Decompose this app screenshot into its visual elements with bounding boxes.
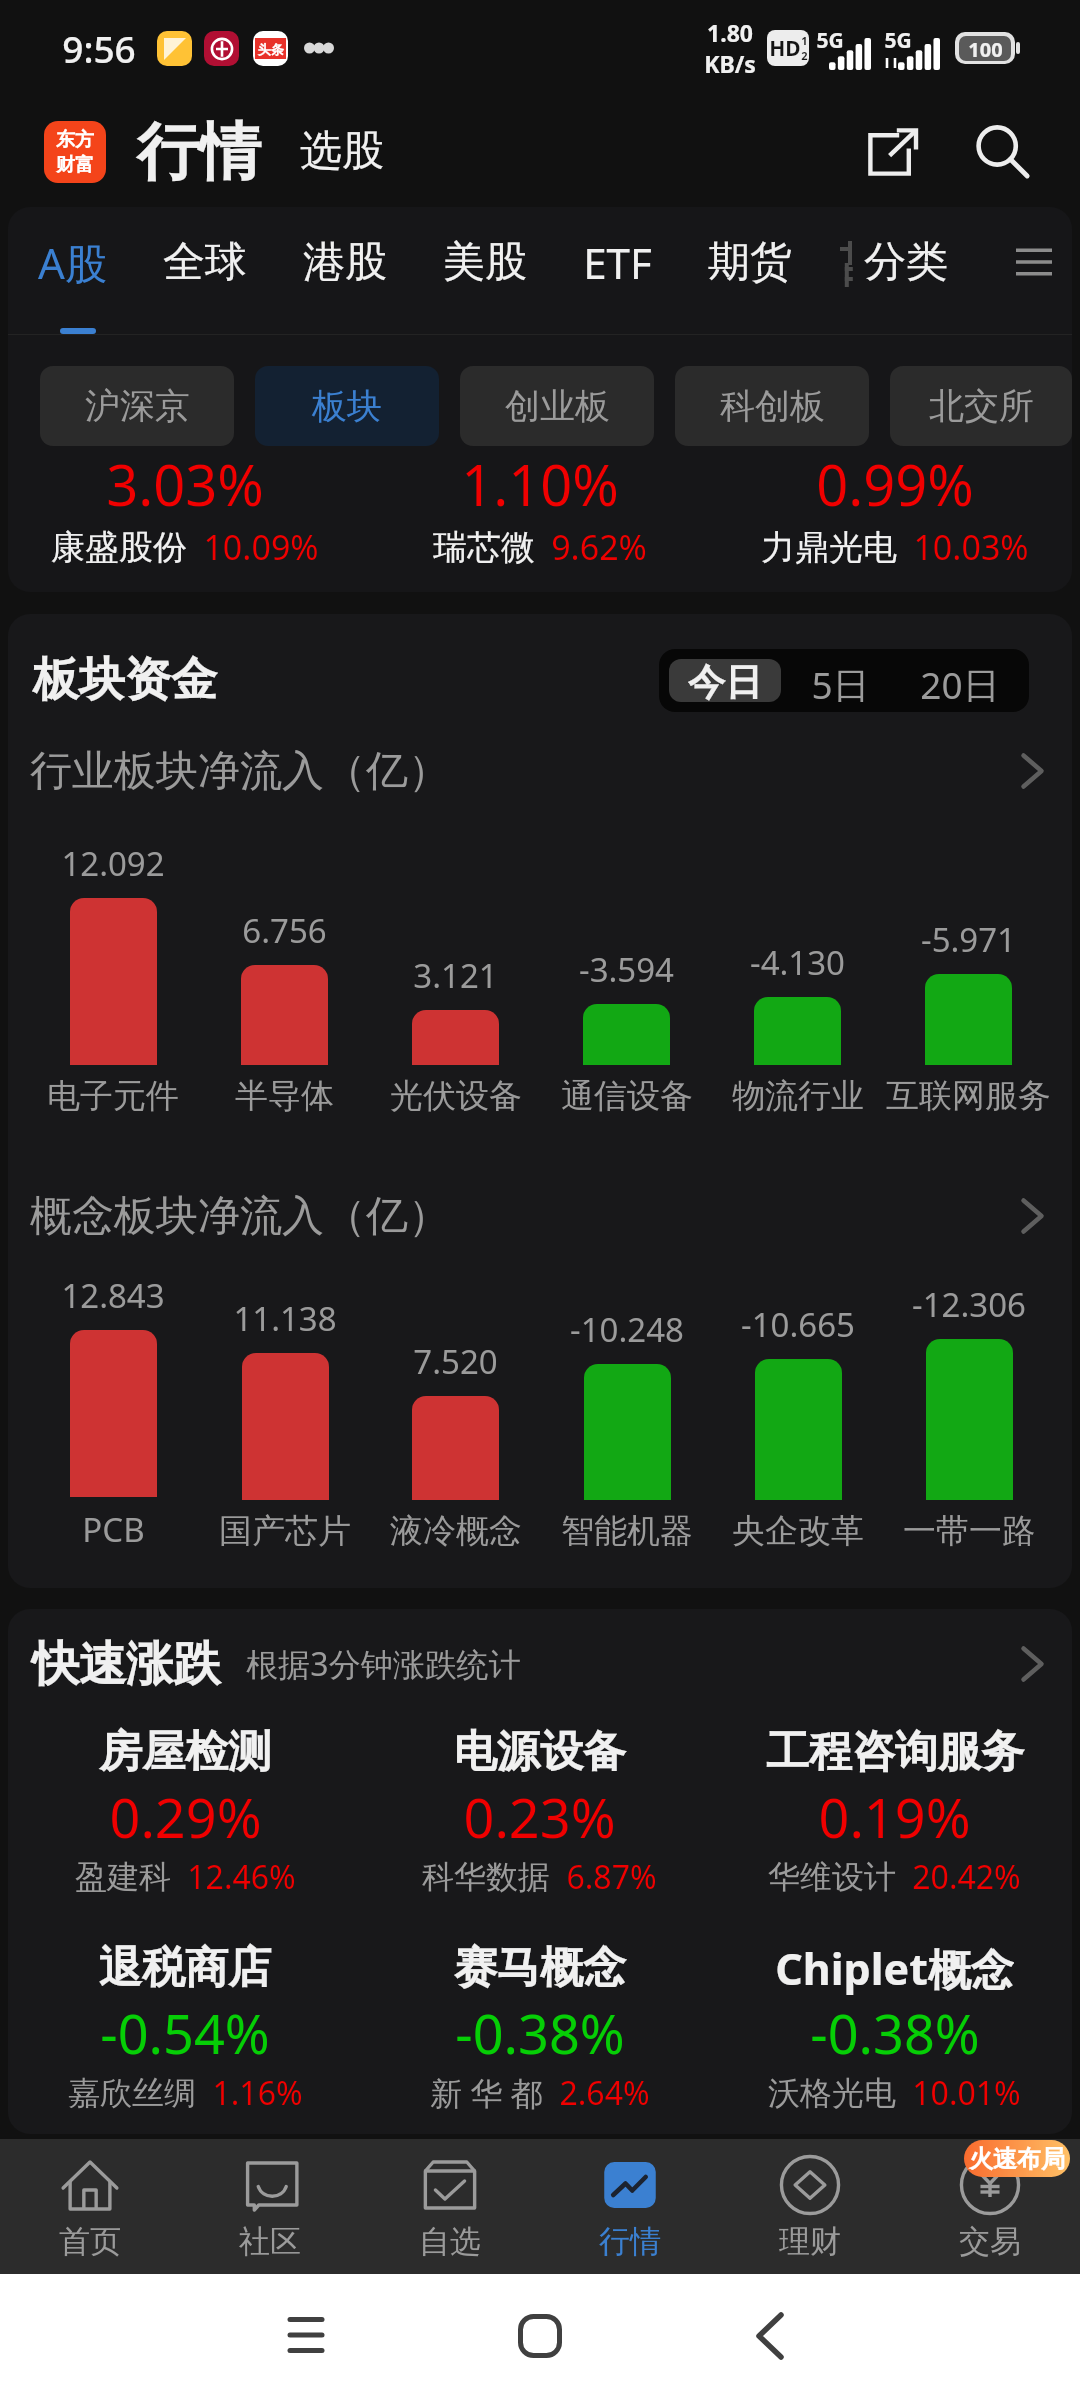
button[interactable]: 交易 [900, 2139, 1080, 2274]
staticText: 10.09% [203, 524, 319, 570]
button[interactable]: 12.092 [27, 836, 199, 1117]
button[interactable]: 港股 [303, 236, 387, 289]
staticText: 财富 [56, 153, 94, 177]
staticText: 11.138 [233, 1296, 337, 1341]
button[interactable]: 赛马概念 [362, 1939, 717, 2134]
button[interactable]: 沪深京 [40, 366, 234, 446]
staticText: 液冷概念 [390, 1510, 522, 1552]
button[interactable]: -10.248 [541, 1271, 712, 1552]
button[interactable]: 理财 [720, 2139, 900, 2274]
staticText: -0.54% [100, 1996, 270, 2058]
button[interactable]: 电源设备 [362, 1723, 717, 1939]
staticText: -4.130 [750, 940, 845, 985]
button[interactable]: 房屋检测 [8, 1723, 362, 1939]
staticText: 智能机器 [561, 1510, 693, 1552]
button[interactable]: 快速涨跌 [8, 1631, 1072, 1697]
staticText: 嘉欣丝绸 [68, 2073, 196, 2113]
staticText: PCB [82, 1507, 145, 1552]
button[interactable]: 科创板 [675, 366, 869, 446]
button[interactable]: 6.756 [199, 836, 370, 1117]
staticText: 力鼎光电 [761, 526, 897, 569]
button[interactable]: -3.594 [541, 836, 712, 1117]
staticText: 分类 [864, 236, 948, 289]
button[interactable]: 概念板块净流入（亿） [8, 1183, 1072, 1249]
staticText: 3.121 [413, 953, 498, 998]
staticText: Chiplet概念 [775, 1939, 1014, 1996]
staticText: -5.971 [921, 917, 1016, 962]
staticText: 3.03% [106, 446, 264, 508]
staticText: 2.64% [559, 2071, 650, 2115]
staticText: 12.46% [187, 1855, 296, 1899]
staticText: 6.756 [242, 908, 327, 953]
staticText: 5G [816, 26, 844, 55]
button[interactable]: 退税商店 [8, 1939, 362, 2134]
button[interactable]: 板块 [255, 366, 439, 446]
staticText: 盈建科 [75, 1857, 171, 1897]
staticText: 10.01% [912, 2071, 1021, 2115]
staticText: 头条 [258, 41, 284, 57]
button[interactable]: More tabs [1004, 232, 1064, 292]
button[interactable]: 首页 [0, 2139, 180, 2274]
staticText: 港股 [303, 236, 387, 289]
staticText: HD [769, 34, 801, 63]
button[interactable]: 今日 [669, 659, 781, 702]
staticText: 快速涨跌 [32, 1635, 220, 1694]
button[interactable]: 行情 [540, 2139, 720, 2274]
button[interactable]: 20日 [900, 659, 1019, 702]
button[interactable]: Home [463, 2274, 617, 2400]
button[interactable]: 7.520 [370, 1271, 541, 1552]
button[interactable]: 0.99% [717, 446, 1072, 570]
staticText: 物流行业 [732, 1075, 864, 1117]
staticText: 首页 [59, 2222, 121, 2261]
staticText: 12.092 [61, 841, 165, 886]
staticText: 互联网服务 [886, 1075, 1051, 1117]
button[interactable]: 自选 [360, 2139, 540, 2274]
button[interactable]: Share [854, 114, 930, 190]
button[interactable]: 行业板块净流入（亿） [8, 738, 1072, 804]
button[interactable]: 11.138 [199, 1271, 370, 1552]
button[interactable]: Recents [229, 2274, 383, 2400]
button[interactable]: ETF [583, 234, 652, 291]
staticText: 创业板 [505, 384, 610, 428]
button[interactable]: 创业板 [460, 366, 654, 446]
button[interactable]: 3.03% [8, 446, 362, 570]
staticText: 9:56 [62, 23, 136, 73]
button[interactable]: -4.130 [712, 836, 883, 1117]
staticText: 0.29% [109, 1780, 262, 1842]
staticText: 行业板块净流入（亿） [30, 745, 450, 798]
staticText: 华维设计 [768, 1857, 896, 1897]
button[interactable]: 1.10% [362, 446, 717, 570]
staticText: 0.23% [463, 1780, 616, 1842]
staticText: 100 [968, 36, 1003, 61]
staticText: 1.80 [707, 17, 753, 48]
button[interactable]: Chiplet概念 [717, 1939, 1072, 2134]
button[interactable]: 全球 [163, 236, 247, 289]
button[interactable]: 期货 [708, 236, 792, 289]
button[interactable]: -5.971 [883, 836, 1054, 1117]
button[interactable]: Back [693, 2274, 847, 2400]
staticText: 9.62% [551, 524, 647, 570]
button[interactable]: 5日 [781, 659, 900, 702]
button[interactable]: Search [964, 114, 1040, 190]
button[interactable]: 美股 [443, 236, 527, 289]
button[interactable]: 社区 [180, 2139, 360, 2274]
staticText: -10.665 [741, 1302, 855, 1347]
staticText: 央企改革 [732, 1510, 864, 1552]
staticText: 概念板块净流入（亿） [30, 1190, 450, 1243]
staticText: 6.87% [566, 1855, 657, 1899]
button[interactable]: 北交所 [890, 366, 1072, 446]
staticText: -12.306 [912, 1282, 1026, 1327]
button[interactable]: 12.843 [27, 1271, 199, 1552]
staticText: 北交所 [929, 384, 1034, 428]
button[interactable]: -12.306 [883, 1271, 1054, 1552]
button[interactable]: 火速布局 [964, 2140, 1070, 2177]
staticText: 房屋检测 [99, 1725, 271, 1779]
button[interactable]: 3.121 [370, 836, 541, 1117]
button[interactable]: 分类 [864, 236, 948, 289]
button[interactable]: 工程咨询服务 [717, 1723, 1072, 1939]
staticText: 7.520 [413, 1339, 498, 1384]
staticText: 1 [801, 33, 808, 48]
button[interactable]: A股 [38, 234, 107, 291]
staticText: 1.10% [461, 446, 619, 508]
button[interactable]: -10.665 [712, 1271, 883, 1552]
